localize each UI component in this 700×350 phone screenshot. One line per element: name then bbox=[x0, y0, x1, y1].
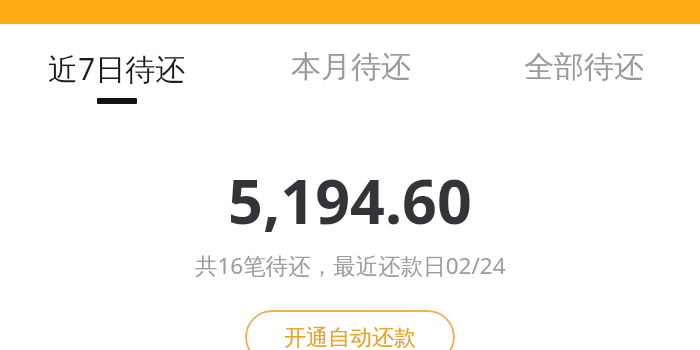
staticText: 共16笔待还，最近还款日02/24 bbox=[195, 250, 506, 281]
button[interactable]: 全部待还 bbox=[467, 24, 700, 109]
staticText: 全部待还 bbox=[524, 48, 644, 86]
button[interactable]: 近7日待还 bbox=[0, 24, 234, 109]
staticText: 本月待还 bbox=[291, 48, 411, 86]
staticText: 开通自动还款 bbox=[284, 324, 416, 350]
button[interactable]: 本月待还 bbox=[234, 24, 467, 109]
staticText: 5,194.60 bbox=[228, 159, 472, 233]
staticText: 近7日待还 bbox=[48, 48, 186, 89]
button[interactable]: 开通自动还款 bbox=[245, 310, 455, 350]
